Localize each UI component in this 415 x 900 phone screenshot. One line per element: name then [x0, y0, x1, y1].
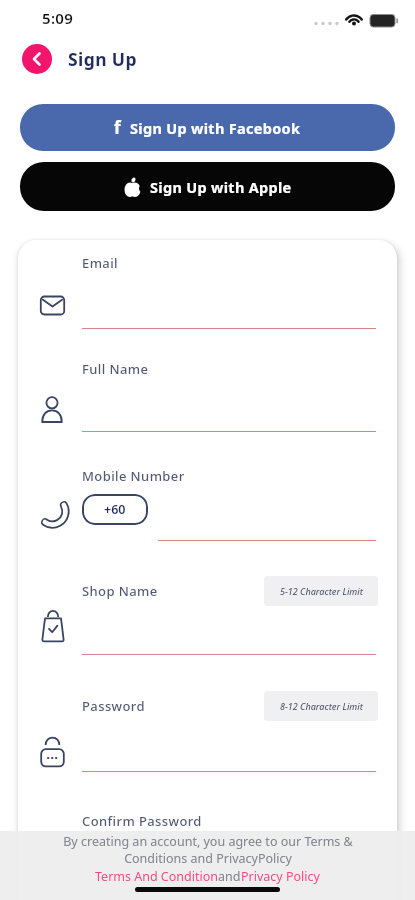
staticText: Password: [82, 697, 145, 715]
staticText: Mobile Number: [82, 467, 185, 485]
staticText: Confirm Password: [82, 812, 202, 830]
button[interactable]: f: [20, 104, 395, 151]
staticText: 5-12 Character Limit: [280, 585, 363, 597]
staticText: 8-12 Character Limit: [280, 700, 363, 712]
button[interactable]: +60: [82, 494, 148, 525]
staticText: Shop Name: [82, 582, 158, 600]
staticText: Sign Up with Apple: [150, 177, 292, 197]
staticText: Sign Up with Facebook: [130, 118, 301, 138]
staticText: +60: [104, 501, 126, 518]
staticText: Full Name: [82, 360, 149, 378]
staticText: f: [114, 116, 121, 139]
button[interactable]: Privacy Policy: [241, 868, 320, 885]
staticText: Sign Up: [68, 47, 137, 71]
staticText: and: [218, 868, 241, 885]
button[interactable]: [22, 44, 52, 74]
button[interactable]: Terms And Condition: [95, 868, 218, 885]
staticText: By creating an account, you agree to our…: [63, 833, 353, 850]
staticText: Email: [82, 254, 119, 272]
button[interactable]: Sign Up with Apple: [20, 162, 395, 211]
staticText: 5:09: [42, 8, 74, 28]
staticText: Conditions and PrivacyPolicy: [124, 850, 292, 867]
